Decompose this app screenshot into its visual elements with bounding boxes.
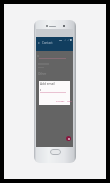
staticText: 4G [59,38,63,41]
staticText: ADD [67,100,72,103]
staticText: Add email [40,82,55,86]
staticText: CANCEL [56,100,65,103]
button[interactable]: CANCEL [56,100,65,103]
button[interactable]: Add [66,136,71,141]
staticText: Contact [42,41,53,45]
staticText: Other [38,72,47,76]
button[interactable]: ADD [67,100,72,103]
button[interactable]: Navigate up [37,41,41,45]
